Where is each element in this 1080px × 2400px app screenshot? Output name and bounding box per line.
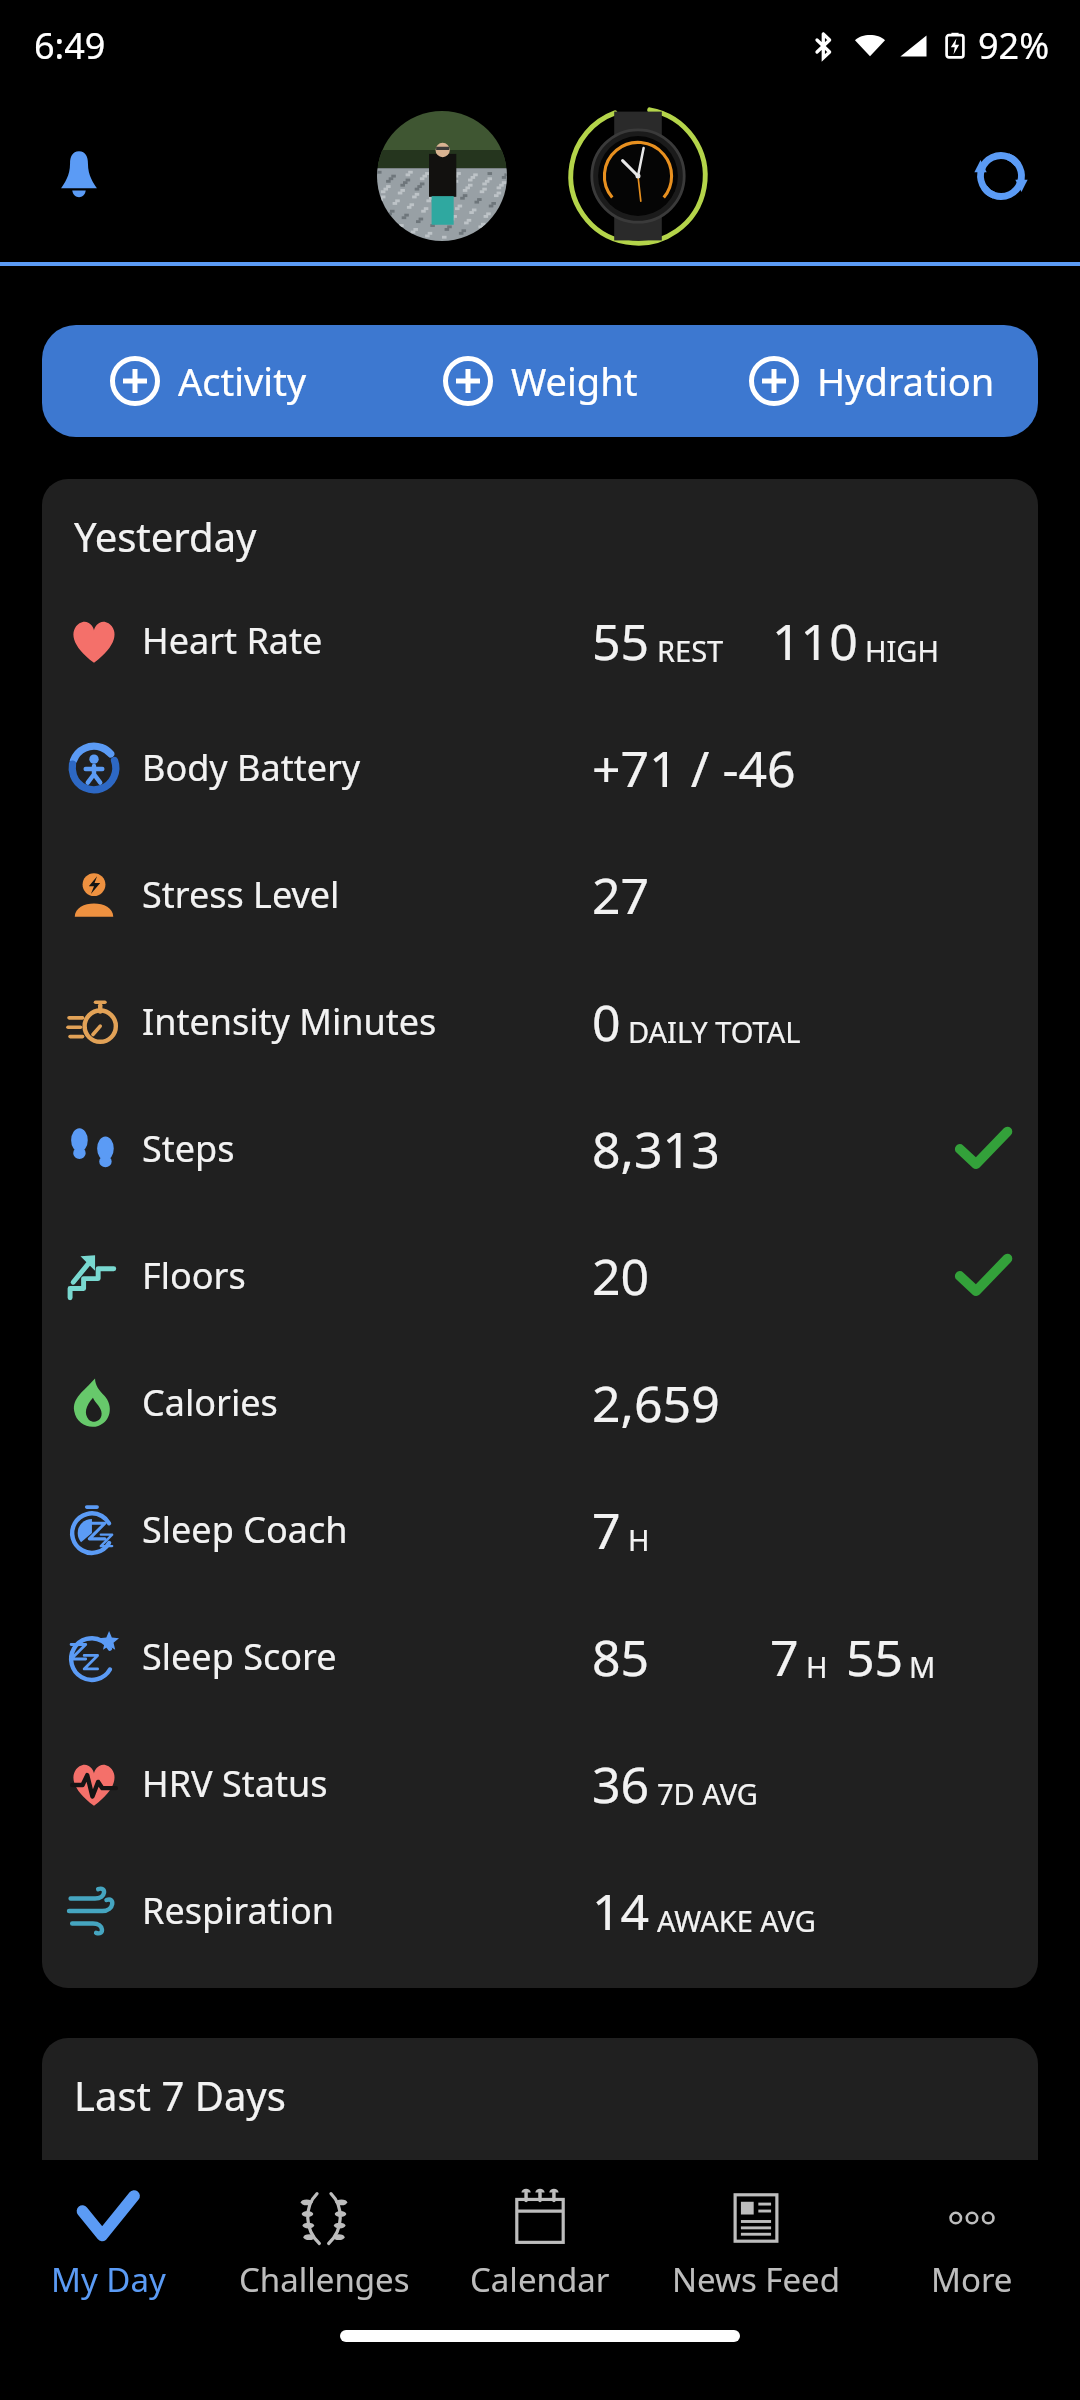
staticText: Calendar [470, 2257, 610, 2302]
staticText: Last 7 Days [74, 2068, 286, 2122]
staticText: 92% [978, 21, 1050, 70]
staticText: Body Battery [142, 743, 361, 792]
button[interactable]: Notifications [34, 131, 124, 221]
staticText: +71 / -46 [592, 734, 796, 802]
staticText: 36 [592, 1750, 650, 1818]
button[interactable]: Heart Rate [42, 577, 1038, 704]
button[interactable]: Challenges [216, 2160, 432, 2330]
staticText: Calories [142, 1378, 278, 1427]
staticText: Hydration [817, 355, 995, 407]
button[interactable]: Calendar [432, 2160, 648, 2330]
button[interactable]: Device [568, 106, 708, 246]
staticText: Challenges [239, 2257, 410, 2302]
staticText: H [806, 1647, 828, 1686]
staticText: Stress Level [142, 870, 340, 919]
staticText: 110 [772, 607, 858, 675]
staticText: 85 [592, 1623, 650, 1691]
staticText: Intensity Minutes [142, 997, 437, 1046]
staticText: 2,659 [592, 1369, 720, 1437]
button[interactable]: Hydration [706, 325, 1038, 437]
button[interactable]: Respiration [42, 1847, 1038, 1974]
staticText: 55 [846, 1623, 904, 1691]
button[interactable]: Activity [42, 325, 374, 437]
staticText: Steps [142, 1124, 235, 1173]
button[interactable]: Weight [374, 325, 706, 437]
staticText: Activity [178, 355, 307, 407]
staticText: Sleep Coach [142, 1505, 348, 1554]
button[interactable]: My Day [0, 2160, 216, 2330]
staticText: H [628, 1520, 650, 1559]
staticText: 7 [770, 1623, 799, 1691]
button[interactable]: HRV Status [42, 1720, 1038, 1847]
staticText: Sleep Score [142, 1632, 337, 1681]
staticText: Yesterday [74, 509, 257, 563]
staticText: REST [657, 631, 724, 670]
staticText: 55 [592, 607, 650, 675]
staticText: DAILY TOTAL [628, 1012, 801, 1051]
staticText: 14 [592, 1877, 650, 1945]
button[interactable]: Sleep Score [42, 1593, 1038, 1720]
staticText: HIGH [865, 631, 939, 670]
staticText: 20 [592, 1242, 650, 1310]
staticText: My Day [51, 2257, 166, 2302]
staticText: 27 [592, 861, 650, 929]
button[interactable]: Floors [42, 1212, 1038, 1339]
staticText: 7 [592, 1496, 621, 1564]
button[interactable]: Sleep Coach [42, 1466, 1038, 1593]
button[interactable]: Profile [377, 111, 507, 241]
staticText: Weight [511, 355, 638, 407]
button[interactable]: Steps [42, 1085, 1038, 1212]
button[interactable]: Body Battery [42, 704, 1038, 831]
staticText: More [931, 2257, 1013, 2302]
staticText: Heart Rate [142, 2175, 323, 2224]
button[interactable]: Intensity Minutes [42, 958, 1038, 1085]
button[interactable]: Stress Level [42, 831, 1038, 958]
staticText: Respiration [142, 1886, 335, 1935]
staticText: 0 [592, 988, 621, 1056]
button[interactable]: Calories [42, 1339, 1038, 1466]
staticText: Heart Rate [142, 616, 323, 665]
staticText: 6:49 [34, 21, 106, 70]
staticText: AWAKE AVG [657, 1901, 816, 1940]
button[interactable]: More [864, 2160, 1080, 2330]
staticText: 8,313 [592, 1115, 720, 1183]
staticText: M [909, 1647, 936, 1686]
button[interactable]: Heart Rate [42, 2136, 1038, 2263]
staticText: News Feed [672, 2257, 841, 2302]
staticText: HRV Status [142, 1759, 328, 1808]
button[interactable]: News Feed [648, 2160, 864, 2330]
button[interactable]: Sync [956, 131, 1046, 221]
staticText: 7D AVG [657, 1774, 758, 1813]
staticText: Floors [142, 1251, 246, 1300]
